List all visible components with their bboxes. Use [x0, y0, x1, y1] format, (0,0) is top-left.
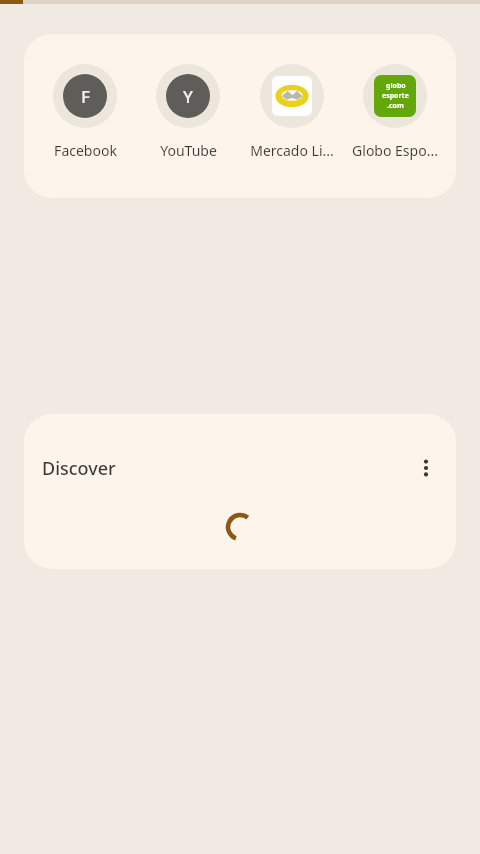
button[interactable]: F — [35, 64, 135, 160]
staticText: Y — [183, 85, 193, 108]
staticText: Mercado Li... — [250, 141, 334, 160]
button[interactable]: Discover — [42, 456, 116, 481]
staticText: esporte — [382, 91, 409, 101]
staticText: Globo Espo... — [352, 141, 438, 160]
staticText: Facebook — [54, 141, 117, 160]
button[interactable]: Y — [138, 64, 238, 160]
button[interactable]: Mercado Li... — [242, 64, 342, 160]
button[interactable]: More options — [406, 448, 446, 488]
button[interactable]: globo — [345, 64, 445, 160]
staticText: YouTube — [160, 141, 217, 160]
staticText: .com — [387, 101, 404, 111]
staticText: F — [81, 85, 90, 108]
staticText: globo — [386, 81, 406, 91]
